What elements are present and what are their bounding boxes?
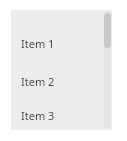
staticText: Item 3 (21, 108, 55, 123)
button[interactable]: Item 2 (11, 62, 112, 100)
staticText: Item 1 (21, 36, 55, 51)
button[interactable]: Item 1 (11, 10, 112, 62)
button[interactable]: Scroll list (104, 13, 111, 48)
staticText: Item 2 (21, 74, 55, 89)
button[interactable]: Item 3 (11, 100, 112, 130)
